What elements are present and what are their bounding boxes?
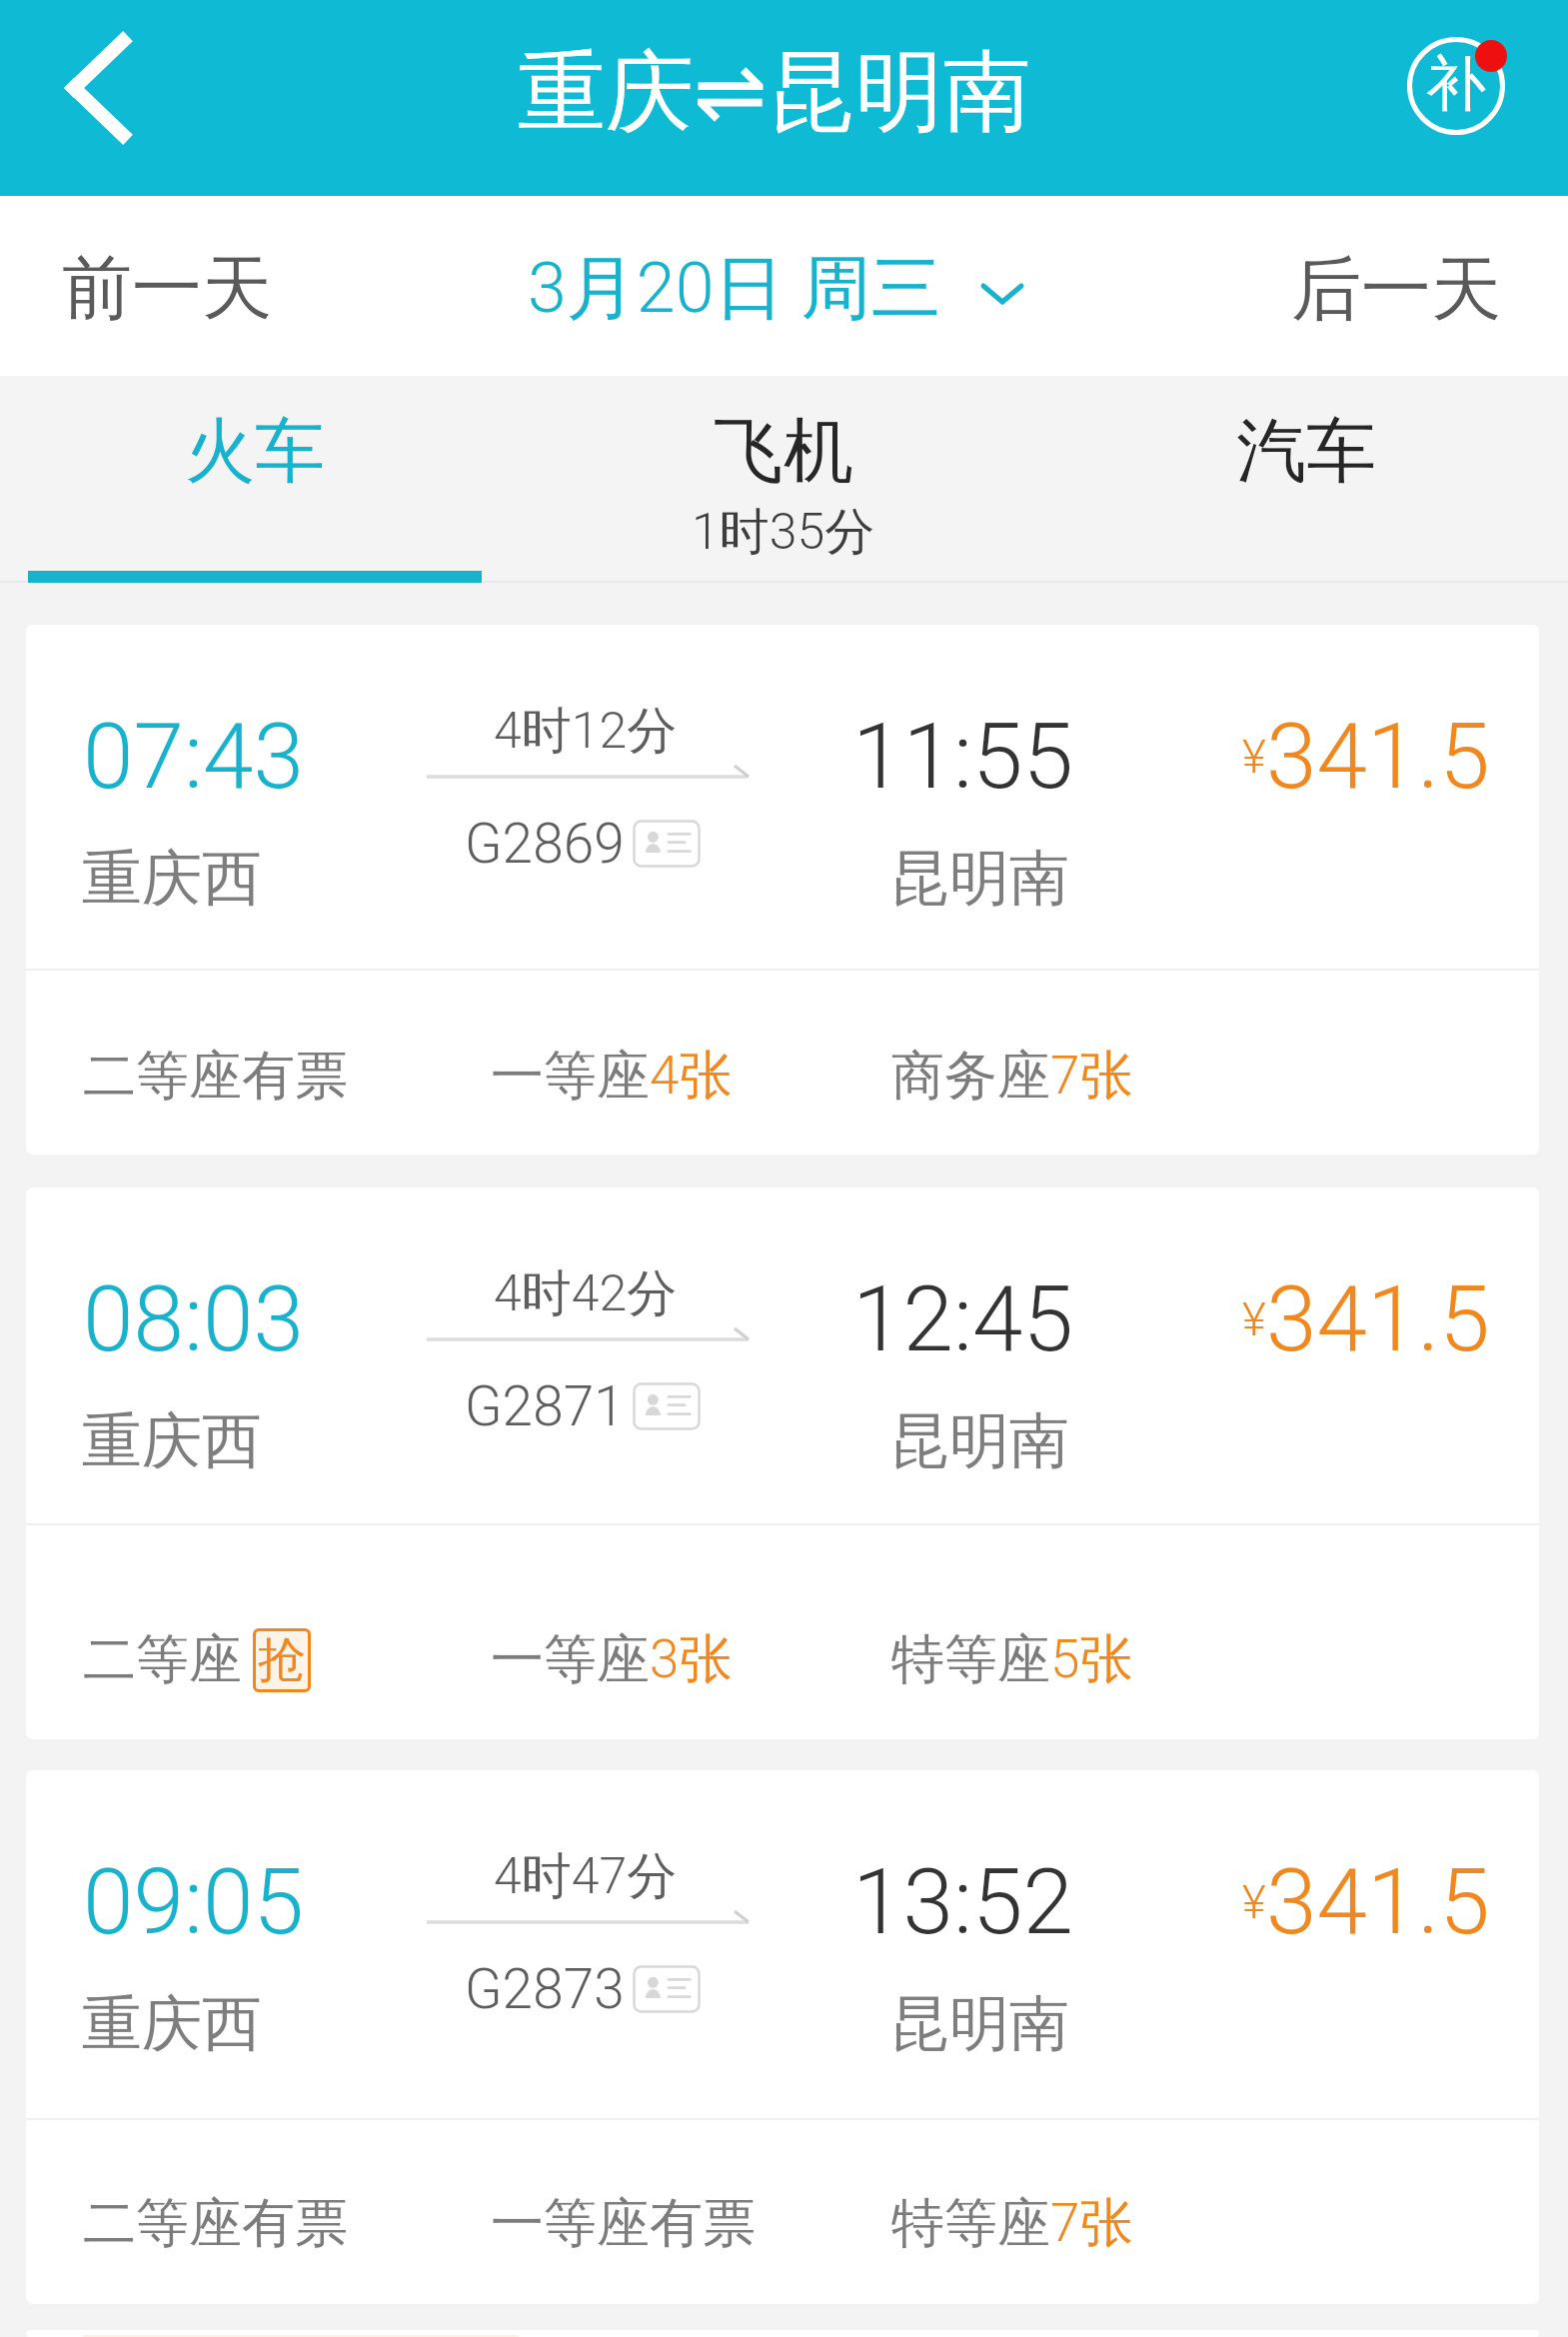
button[interactable]: Ticket change — [1387, 17, 1525, 155]
staticText: ¥ — [1242, 1292, 1266, 1346]
staticText: 二等座 — [83, 1043, 242, 1110]
staticText: 08:03 — [83, 1266, 305, 1373]
staticText: 3张 — [650, 1626, 733, 1693]
staticText: G2873 — [465, 1957, 625, 2021]
button[interactable]: 汽车 — [1044, 376, 1568, 583]
staticText: 汽车 — [1236, 408, 1376, 496]
staticText: 后一天 — [1291, 246, 1501, 334]
staticText: 有票 — [242, 1043, 348, 1110]
staticText: 3月20日 周三 — [528, 245, 941, 333]
staticText: 商务座 — [891, 1043, 1050, 1110]
staticText: 前一天 — [62, 245, 272, 333]
staticText: 12:45 — [852, 1266, 1074, 1373]
staticText: 11:55 — [852, 704, 1074, 811]
staticText: ¥ — [1242, 730, 1266, 784]
staticText: 一等座 — [491, 1626, 650, 1693]
staticText: 有票 — [242, 2190, 348, 2257]
staticText: 09:05 — [83, 1849, 305, 1956]
staticText: 7张 — [1050, 2190, 1133, 2257]
staticText: 重庆西 — [82, 841, 262, 917]
staticText: G2869 — [465, 812, 625, 876]
staticText: G2871 — [465, 1374, 625, 1438]
staticText: 特等座 — [891, 1626, 1050, 1693]
button[interactable]: 飞机 — [519, 376, 1048, 583]
staticText: 特等座 — [891, 2190, 1050, 2257]
staticText: 重庆西 — [82, 1403, 262, 1479]
staticText: 4时47分 — [494, 1845, 678, 1908]
staticText: 一等座 — [491, 1043, 650, 1110]
staticText: 抢 — [258, 1630, 306, 1690]
staticText: 昆明南 — [889, 1986, 1069, 2062]
staticText: 7张 — [1050, 1043, 1133, 1110]
staticText: 重庆⇌昆明南 — [518, 37, 1031, 148]
button[interactable]: 后一天 — [1188, 196, 1568, 376]
staticText: 昆明南 — [889, 841, 1069, 917]
staticText: 4时12分 — [494, 700, 678, 763]
button[interactable] — [26, 2330, 1539, 2337]
staticText: 火车 — [185, 408, 325, 496]
button[interactable]: 09:05 — [26, 1770, 1539, 2304]
staticText: 二等座 — [83, 1626, 242, 1693]
staticText: 341.5 — [1266, 1849, 1490, 1956]
button[interactable]: 07:43 — [26, 625, 1539, 1155]
staticText: 07:43 — [83, 704, 305, 811]
staticText: 341.5 — [1266, 1266, 1490, 1373]
button[interactable]: Back — [0, 0, 190, 196]
button[interactable]: 3月20日 周三 — [506, 196, 1045, 376]
staticText: 重庆西 — [82, 1986, 262, 2062]
staticText: 有票 — [650, 2190, 756, 2257]
staticText: 4时42分 — [494, 1262, 678, 1325]
staticText: 二等座 — [83, 2190, 242, 2257]
button[interactable]: 火车 — [0, 376, 510, 583]
staticText: 昆明南 — [889, 1403, 1069, 1479]
staticText: 13:52 — [852, 1849, 1074, 1956]
staticText: 341.5 — [1266, 704, 1490, 811]
staticText: 4张 — [650, 1043, 733, 1110]
button[interactable]: 08:03 — [26, 1187, 1539, 1739]
staticText: 飞机 — [714, 408, 853, 496]
button[interactable]: 前一天 — [0, 196, 390, 376]
staticText: 补 — [1426, 46, 1486, 122]
staticText: 1时35分 — [692, 501, 875, 564]
staticText: ¥ — [1242, 1875, 1266, 1929]
staticText: 5张 — [1050, 1626, 1133, 1693]
staticText: 一等座 — [491, 2190, 650, 2257]
